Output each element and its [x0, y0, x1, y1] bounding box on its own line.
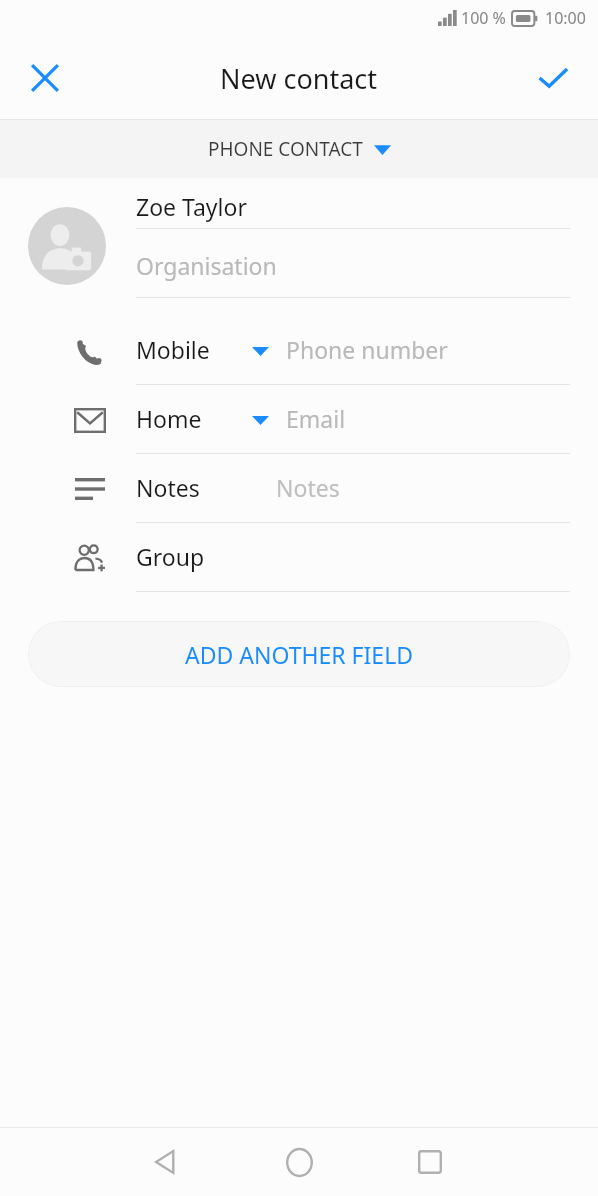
staticText: Group — [136, 541, 205, 572]
staticText: Home — [136, 403, 202, 434]
staticText: Email — [286, 403, 346, 434]
button[interactable]: Change Home type — [248, 409, 272, 431]
staticText: Organisation — [136, 250, 277, 281]
button[interactable]: Notes — [0, 454, 598, 523]
staticText: 100 % — [461, 7, 506, 29]
button[interactable]: Back — [132, 1128, 200, 1196]
button[interactable]: Recent apps — [396, 1128, 464, 1196]
button[interactable]: Add photo — [28, 207, 106, 285]
staticText: Notes — [276, 472, 340, 503]
staticText: Notes — [136, 472, 200, 503]
button[interactable]: Group — [0, 523, 598, 592]
staticText: ADD ANOTHER FIELD — [185, 639, 413, 670]
button[interactable]: Organisation — [136, 229, 570, 297]
staticText: Mobile — [136, 334, 210, 365]
button[interactable]: PHONE CONTACT — [0, 120, 598, 178]
button[interactable]: Mobile — [0, 316, 598, 385]
staticText: 10:00 — [545, 7, 586, 29]
staticText: New contact — [220, 60, 378, 97]
button[interactable]: Save — [525, 50, 581, 106]
button[interactable]: Change Mobile type — [248, 340, 272, 362]
staticText: PHONE CONTACT — [208, 136, 363, 162]
button[interactable]: Zoe Taylor — [136, 178, 570, 228]
button[interactable]: Cancel — [17, 50, 73, 106]
staticText: Phone number — [286, 334, 448, 365]
button[interactable]: Home — [0, 385, 598, 454]
button[interactable]: ADD ANOTHER FIELD — [28, 621, 570, 687]
button[interactable]: Home — [265, 1128, 333, 1196]
staticText: Zoe Taylor — [136, 191, 247, 222]
